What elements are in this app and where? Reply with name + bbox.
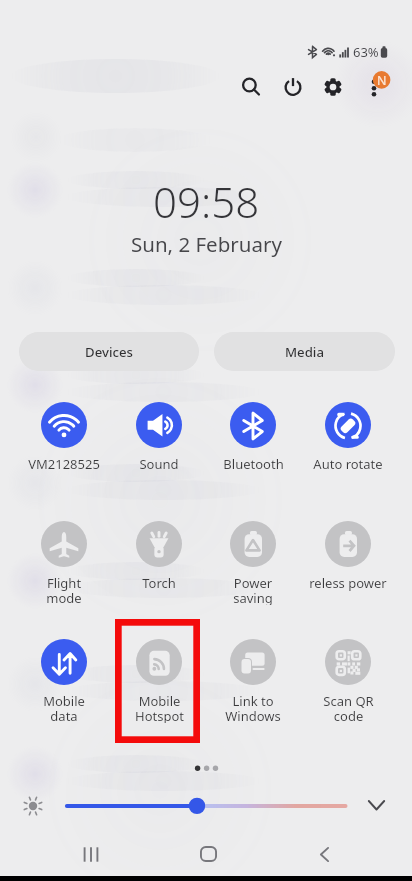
button[interactable]: Mobile data: [17, 639, 111, 723]
staticText: VM2128525: [28, 455, 100, 473]
staticText: Mobile Hotspot: [135, 692, 184, 723]
button[interactable]: Power off: [273, 67, 313, 107]
staticText: Devices: [85, 343, 133, 361]
button[interactable]: Mobile Hotspot: [112, 639, 206, 723]
button[interactable]: Home: [175, 833, 241, 875]
button[interactable]: Expand quick settings: [360, 789, 393, 822]
staticText: Link to Windows: [225, 692, 281, 723]
button[interactable]: Scan QR code: [301, 639, 395, 723]
staticText: reless power: [309, 574, 387, 592]
button[interactable]: VM2128525: [17, 402, 111, 486]
button[interactable]: Bluetooth: [206, 402, 300, 486]
button[interactable]: Settings: [313, 67, 353, 107]
staticText: Flight mode: [46, 574, 82, 605]
staticText: Media: [285, 343, 324, 361]
staticText: 63%: [353, 43, 379, 61]
staticText: Auto rotate: [313, 455, 383, 473]
button[interactable]: Torch: [112, 521, 206, 605]
button[interactable]: Flight mode: [17, 521, 111, 605]
button[interactable]: Media: [214, 332, 395, 371]
button[interactable]: Link to Windows: [206, 639, 300, 723]
staticText: N: [377, 72, 387, 89]
staticText: Sound: [139, 455, 179, 473]
button[interactable]: More options: [352, 66, 396, 110]
staticText: Bluetooth: [223, 455, 284, 473]
button[interactable]: Back: [291, 833, 357, 875]
staticText: Torch: [142, 574, 176, 592]
staticText: Scan QR code: [323, 692, 374, 723]
button[interactable]: reless power: [301, 521, 395, 605]
staticText: Power saving: [233, 574, 273, 605]
button[interactable]: Recent apps: [58, 833, 124, 875]
button[interactable]: Auto rotate: [301, 402, 395, 486]
staticText: Mobile data: [43, 692, 85, 723]
button[interactable]: Search: [230, 67, 270, 107]
button[interactable]: Power saving: [206, 521, 300, 605]
button[interactable]: Devices: [19, 332, 199, 371]
staticText: Sun, 2 February: [131, 230, 282, 258]
button[interactable]: Sound: [112, 402, 206, 486]
staticText: 09:58: [153, 173, 260, 230]
